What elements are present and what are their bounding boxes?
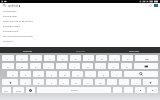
staticText: p bbox=[126, 65, 128, 68]
button[interactable]: best quick tips android tablet bbox=[0, 34, 160, 39]
staticText: 3 bbox=[35, 57, 37, 60]
button[interactable]: android news bbox=[0, 14, 160, 19]
button[interactable]: Ctrl bbox=[2, 87, 11, 93]
button[interactable]: n bbox=[83, 79, 93, 85]
other: Shift bbox=[149, 81, 152, 84]
staticText: android bbox=[23, 49, 32, 52]
staticText: . bbox=[124, 81, 125, 84]
button[interactable]: y bbox=[69, 63, 80, 69]
staticText: android tv bbox=[3, 40, 14, 43]
staticText: t bbox=[61, 65, 62, 68]
other: Left bbox=[139, 89, 142, 92]
staticText: 4 bbox=[49, 57, 51, 60]
button[interactable]: u bbox=[82, 63, 93, 69]
button[interactable]: o bbox=[108, 63, 119, 69]
button[interactable]: t bbox=[56, 63, 67, 69]
button[interactable]: 8 bbox=[96, 55, 107, 61]
button[interactable]: things like how to fix android bbox=[0, 19, 160, 24]
button[interactable]: i bbox=[95, 63, 106, 69]
button[interactable]: Search bbox=[124, 71, 158, 77]
button[interactable]: android tv bbox=[0, 39, 160, 44]
staticText: b bbox=[75, 81, 77, 84]
button[interactable]: k bbox=[98, 71, 109, 77]
button[interactable]: 2 bbox=[16, 55, 28, 61]
staticText: 2 bbox=[21, 57, 23, 60]
button[interactable]: androids bbox=[107, 47, 160, 53]
button[interactable]: Settings bbox=[26, 87, 35, 93]
staticText: h bbox=[77, 73, 79, 76]
button[interactable]: 5 bbox=[57, 55, 68, 61]
button[interactable]: Del bbox=[135, 55, 158, 61]
staticText: i bbox=[100, 65, 101, 68]
button[interactable]: 9 bbox=[109, 55, 120, 61]
staticText: g bbox=[64, 73, 66, 76]
button[interactable]: Clear bbox=[149, 4, 152, 7]
staticText: c bbox=[51, 81, 53, 84]
button[interactable]: c bbox=[46, 79, 57, 85]
button[interactable]: English bbox=[37, 87, 111, 93]
button[interactable]: 6 bbox=[70, 55, 81, 61]
staticText: android phone bbox=[3, 30, 19, 33]
staticText: q bbox=[7, 65, 9, 68]
button[interactable]: 7 bbox=[83, 55, 94, 61]
button[interactable]: 4 bbox=[44, 55, 55, 61]
button[interactable]: Shift bbox=[143, 79, 158, 85]
button[interactable]: b bbox=[71, 79, 81, 85]
button[interactable]: w bbox=[16, 63, 28, 69]
staticText: 5 bbox=[62, 57, 64, 60]
button[interactable]: p bbox=[121, 63, 132, 69]
button[interactable]: android bbox=[54, 47, 107, 53]
button[interactable]: android apps bbox=[0, 9, 160, 14]
button[interactable]: android phone bbox=[0, 29, 160, 34]
staticText: android apps bbox=[3, 10, 17, 13]
button[interactable]: e bbox=[30, 63, 41, 69]
button[interactable]: d bbox=[33, 71, 44, 77]
button[interactable]: x bbox=[33, 79, 44, 85]
staticText: 9 bbox=[114, 57, 116, 60]
button[interactable]: Right bbox=[147, 87, 158, 93]
button[interactable]: 0 bbox=[122, 55, 133, 61]
staticText: m bbox=[99, 81, 102, 84]
button[interactable]: / bbox=[131, 79, 141, 85]
other: Shift bbox=[9, 81, 12, 84]
button[interactable]: g bbox=[59, 71, 70, 77]
button[interactable]: android bbox=[0, 47, 54, 53]
staticText: / bbox=[136, 81, 137, 84]
staticText: android recovery bbox=[3, 25, 21, 28]
button[interactable]: f bbox=[46, 71, 57, 77]
button[interactable]: j bbox=[85, 71, 96, 77]
staticText: android bbox=[8, 4, 19, 8]
button[interactable]: Shift bbox=[2, 79, 18, 85]
button[interactable]: Left bbox=[135, 87, 145, 93]
other: Right bbox=[151, 89, 154, 92]
button[interactable]: a bbox=[7, 71, 18, 77]
button[interactable]: r bbox=[43, 63, 54, 69]
staticText: Del bbox=[145, 57, 149, 60]
staticText: Ctrl bbox=[4, 89, 9, 92]
button[interactable]: Backspace bbox=[134, 63, 158, 69]
button[interactable]: z bbox=[20, 79, 31, 85]
button[interactable]: s bbox=[20, 71, 31, 77]
staticText: f bbox=[51, 73, 52, 76]
staticText: a bbox=[12, 73, 14, 76]
button[interactable]: 3 bbox=[30, 55, 42, 61]
button[interactable]: l bbox=[111, 71, 122, 77]
staticText: r bbox=[48, 65, 50, 68]
staticText: n bbox=[87, 81, 89, 84]
button[interactable]: m bbox=[95, 79, 105, 85]
button[interactable]: android recovery bbox=[0, 24, 160, 29]
button[interactable]: q bbox=[2, 63, 14, 69]
button[interactable]: h bbox=[72, 71, 83, 77]
staticText: s bbox=[25, 73, 27, 76]
button[interactable]: Sym bbox=[13, 87, 24, 93]
other: Backspace bbox=[144, 65, 149, 68]
staticText: w bbox=[21, 65, 23, 68]
button[interactable]: 1 bbox=[2, 55, 14, 61]
button[interactable]: v bbox=[59, 79, 69, 85]
